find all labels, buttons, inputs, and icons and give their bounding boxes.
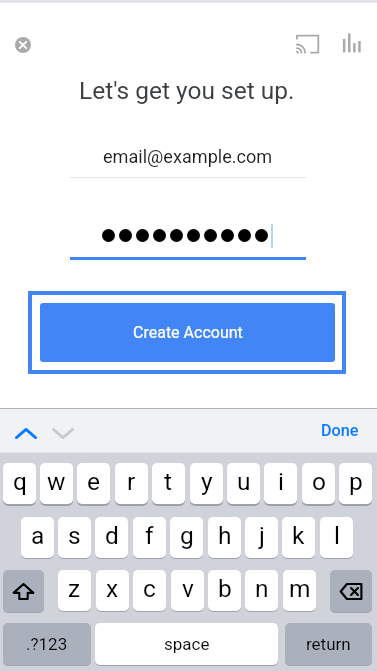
button[interactable]: t (152, 463, 185, 504)
button[interactable]: b (208, 570, 241, 611)
button[interactable]: a (21, 517, 54, 558)
staticText: w (47, 467, 66, 496)
staticText: email@example.com (103, 146, 273, 167)
staticText: z (68, 574, 81, 603)
button[interactable]: Shift (3, 570, 44, 612)
staticText: f (145, 521, 154, 550)
staticText: s (68, 521, 81, 550)
button[interactable]: Previous field (8, 415, 44, 451)
button[interactable]: s (58, 517, 91, 558)
button[interactable]: f (133, 517, 166, 558)
button[interactable]: k (282, 517, 315, 558)
staticText: return (306, 634, 351, 654)
button[interactable]: q (3, 463, 36, 504)
button[interactable]: Close (15, 37, 31, 53)
staticText: Create Account (133, 323, 243, 342)
staticText: o (312, 467, 326, 496)
staticText: c (143, 574, 156, 603)
button[interactable]: i (264, 463, 297, 504)
button[interactable]: y (190, 463, 223, 504)
button[interactable]: z (58, 570, 91, 611)
staticText: n (255, 574, 269, 603)
staticText: a (31, 521, 45, 550)
staticText: b (218, 574, 232, 603)
button[interactable]: w (40, 463, 73, 504)
button[interactable]: l (320, 517, 353, 558)
button[interactable]: Create Account (40, 303, 335, 362)
button[interactable]: v (171, 570, 204, 611)
staticText: i (278, 467, 284, 496)
button[interactable]: Cast (293, 32, 322, 59)
staticText: j (259, 521, 265, 550)
staticText: m (289, 574, 311, 603)
button[interactable]: d (95, 517, 128, 558)
staticText: .?123 (26, 634, 68, 654)
button[interactable]: g (170, 517, 203, 558)
button[interactable]: x (96, 570, 129, 611)
staticText: q (13, 467, 27, 496)
button[interactable]: Done (312, 414, 368, 446)
button[interactable]: Backspace (330, 570, 372, 612)
button[interactable]: Next field (45, 415, 81, 451)
button[interactable]: u (227, 463, 260, 504)
staticText: d (105, 521, 119, 550)
staticText: h (218, 521, 232, 550)
button[interactable]: .?123 (3, 623, 91, 665)
button[interactable]: h (208, 517, 241, 558)
staticText: Done (321, 421, 359, 440)
staticText: y (201, 467, 213, 496)
staticText: g (180, 521, 194, 550)
staticText: t (164, 467, 173, 496)
staticText: u (237, 467, 251, 496)
button[interactable]: j (245, 517, 278, 558)
staticText: e (87, 467, 100, 496)
staticText: Let's get you set up. (79, 76, 295, 105)
staticText: p (349, 467, 363, 496)
staticText: x (106, 574, 119, 603)
button[interactable]: return (285, 623, 372, 665)
staticText: v (182, 574, 194, 603)
button[interactable]: e (77, 463, 110, 504)
button[interactable]: m (283, 570, 316, 611)
staticText: k (292, 521, 305, 550)
button[interactable]: o (302, 463, 335, 504)
button[interactable]: space (95, 623, 278, 665)
button[interactable]: c (133, 570, 166, 611)
staticText: l (334, 521, 340, 550)
staticText: r (127, 467, 136, 496)
button[interactable]: r (115, 463, 148, 504)
button[interactable]: n (245, 570, 278, 611)
button[interactable]: p (339, 463, 372, 504)
staticText: space (164, 634, 210, 654)
button[interactable]: Statistics (340, 32, 364, 59)
